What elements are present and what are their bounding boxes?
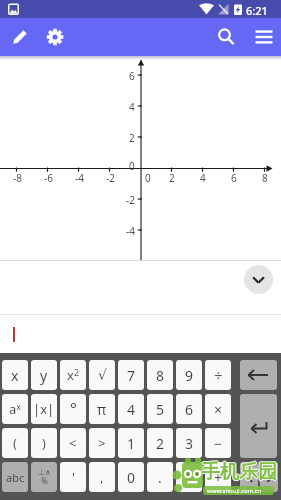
staticText: . [158, 468, 162, 487]
button[interactable] [8, 25, 32, 49]
staticText: √ [98, 367, 107, 383]
staticText: 8 [156, 366, 165, 385]
button[interactable]: − [205, 428, 231, 458]
button[interactable] [240, 360, 277, 390]
button[interactable]: ax [2, 394, 28, 424]
staticText: 9 [185, 366, 194, 385]
staticText: 8 [262, 171, 268, 185]
button[interactable]: y [31, 360, 57, 390]
staticText: + [214, 468, 223, 487]
staticText: − [214, 434, 223, 453]
staticText: x2 [67, 366, 80, 384]
staticText: 0 [127, 468, 136, 487]
button[interactable]: |x| [31, 394, 57, 424]
staticText: 手机乐园 [202, 460, 278, 484]
staticText: ax [9, 400, 22, 418]
staticText: -4 [75, 171, 84, 185]
staticText: , [100, 468, 104, 486]
button[interactable]: × [205, 394, 231, 424]
staticText: |x| [33, 400, 55, 418]
staticText: www.shouji.com.cn [207, 487, 262, 495]
staticText: > [98, 434, 106, 452]
button[interactable]: = [176, 462, 202, 492]
staticText: 4 [129, 100, 135, 112]
staticText: 5 [156, 400, 165, 419]
button[interactable] [0, 315, 281, 353]
button[interactable]: x [2, 360, 28, 390]
staticText: 1 [127, 434, 136, 453]
staticText: -4 [126, 224, 135, 236]
staticText: 3 [185, 434, 194, 453]
button[interactable]: 7 [118, 360, 144, 390]
button[interactable]: ÷ [205, 360, 231, 390]
button[interactable]: 3 [176, 428, 202, 458]
staticText: 0 [129, 159, 135, 171]
button[interactable]: abc [2, 462, 28, 492]
staticText: abc [6, 470, 25, 485]
button[interactable]: 1 [118, 428, 144, 458]
button[interactable] [244, 265, 273, 294]
staticText: × [214, 400, 223, 419]
button[interactable]: + [205, 462, 231, 492]
staticText: ' [72, 468, 75, 486]
staticText: 手机乐园 [201, 459, 277, 483]
staticText: < [69, 434, 77, 452]
button[interactable]: 8 [147, 360, 173, 390]
staticText: -2 [126, 193, 135, 205]
staticText: ÷ [214, 365, 223, 385]
button[interactable]: ° [60, 394, 86, 424]
button[interactable]: < [60, 428, 86, 458]
button[interactable] [252, 25, 276, 49]
staticText: 7 [127, 366, 136, 385]
staticText: 6 [185, 400, 194, 419]
staticText: 6 [231, 171, 237, 185]
button[interactable]: ⊥∧ % [31, 462, 57, 492]
button[interactable]: > [89, 428, 115, 458]
staticText: 手机乐园 [201, 461, 277, 485]
staticText: ( [13, 434, 17, 452]
staticText: 2 [156, 434, 165, 453]
staticText: y [40, 366, 48, 385]
staticText: 4 [127, 400, 136, 419]
staticText: -8 [13, 171, 22, 185]
button[interactable]: ( [2, 428, 28, 458]
button[interactable] [214, 25, 238, 49]
staticText: 6:21 [246, 3, 268, 18]
staticText: -6 [44, 171, 53, 185]
button[interactable]: √ [89, 360, 115, 390]
button[interactable]: , [89, 462, 115, 492]
button[interactable]: 6 [176, 394, 202, 424]
button[interactable]: . [147, 462, 173, 492]
button[interactable]: 9 [176, 360, 202, 390]
staticText: π [97, 400, 107, 419]
staticText: 0 [145, 171, 151, 185]
staticText: 手机乐园 [201, 460, 277, 484]
staticText: = [185, 468, 194, 487]
staticText: ) [42, 434, 46, 452]
staticText: 手机乐园 [200, 460, 276, 484]
button[interactable] [240, 462, 258, 492]
button[interactable] [240, 394, 277, 458]
staticText: -2 [106, 171, 115, 185]
staticText: 2 [129, 131, 135, 143]
button[interactable]: ' [60, 462, 86, 492]
button[interactable]: π [89, 394, 115, 424]
button[interactable]: 4 [118, 394, 144, 424]
staticText: 4 [200, 171, 206, 185]
button[interactable]: 5 [147, 394, 173, 424]
button[interactable]: 2 [147, 428, 173, 458]
button[interactable]: 0 [118, 462, 144, 492]
staticText: x [11, 366, 19, 385]
staticText: 6 [129, 69, 135, 81]
button[interactable] [43, 25, 67, 49]
staticText: ° [70, 398, 77, 420]
button[interactable]: ) [31, 428, 57, 458]
staticText: ⊥∧ % [38, 468, 51, 486]
button[interactable] [260, 462, 278, 492]
button[interactable]: x2 [60, 360, 86, 390]
staticText: 2 [169, 171, 175, 185]
